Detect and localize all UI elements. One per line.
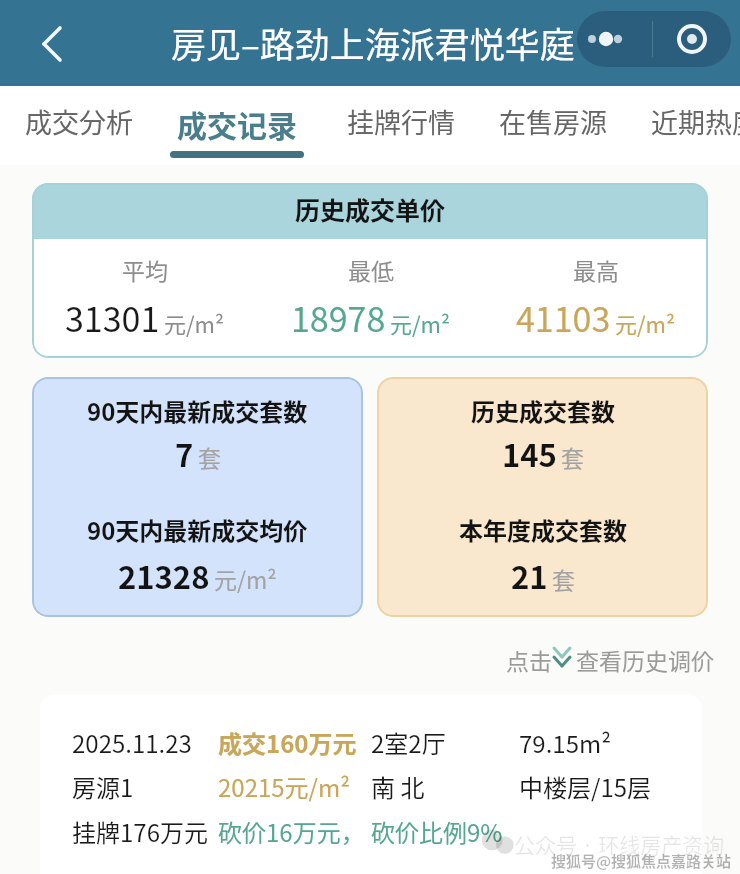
staticText: 中楼层/15层 xyxy=(519,769,652,804)
staticText: 21328 xyxy=(118,553,210,598)
staticText: 145 xyxy=(502,431,557,476)
staticText: 历史成交单价 xyxy=(295,191,446,227)
button[interactable]: 点击 xyxy=(506,637,714,682)
staticText: 7 xyxy=(175,431,194,476)
staticText: 本年度成交套数 xyxy=(459,512,627,547)
staticText: 18978 xyxy=(291,293,386,342)
button[interactable]: 2025.11.23 xyxy=(40,695,702,874)
staticText: 成交分析 xyxy=(25,102,133,141)
staticText: 房见–路劲上海派君悦华庭 xyxy=(171,17,575,68)
staticText: 砍价比例9% xyxy=(371,814,503,849)
staticText: 平均 xyxy=(122,253,168,286)
staticText: 挂牌176万元 xyxy=(72,814,218,849)
staticText: 在售房源 xyxy=(499,102,607,141)
staticText: 元/m² xyxy=(164,307,225,339)
staticText: 90天内最新成交均价 xyxy=(87,512,308,547)
staticText: 21 xyxy=(511,553,548,598)
button[interactable]: 成交分析 xyxy=(13,86,145,165)
staticText: 成交记录 xyxy=(177,102,297,145)
button[interactable]: More options xyxy=(577,11,652,67)
staticText: 元/m² xyxy=(214,562,277,595)
staticText: 79.15m² xyxy=(519,725,612,760)
button[interactable]: 在售房源 xyxy=(487,86,619,165)
staticText: 最高 xyxy=(573,253,619,286)
staticText: 套 xyxy=(198,440,221,473)
staticText: 历史成交套数 xyxy=(471,393,615,428)
staticText: 31301 xyxy=(65,293,160,342)
staticText: 2室2厅 xyxy=(371,725,519,760)
button[interactable]: 历史成交套数 xyxy=(377,377,708,617)
staticText: 套 xyxy=(552,562,575,595)
button[interactable]: 90天内最新成交套数 xyxy=(32,377,363,617)
button[interactable]: Locate xyxy=(653,11,731,67)
staticText: 元/m² xyxy=(615,307,676,339)
staticText: 南 北 xyxy=(371,769,519,804)
staticText: 砍价16万元， xyxy=(218,814,371,849)
staticText: 公众号 · 环线房产资询 xyxy=(514,829,725,859)
button[interactable]: 近期热度 xyxy=(639,86,740,165)
button[interactable]: 挂牌行情 xyxy=(335,86,467,165)
staticText: 点击 xyxy=(506,643,552,676)
staticText: 房源1 xyxy=(72,769,218,804)
staticText: 挂牌行情 xyxy=(347,102,455,141)
staticText: 元/m² xyxy=(390,307,451,339)
staticText: 2025.11.23 xyxy=(72,725,218,760)
staticText: 最低 xyxy=(348,253,394,286)
staticText: 查看历史调价 xyxy=(576,643,714,676)
button[interactable]: 成交记录 xyxy=(158,86,316,165)
button[interactable]: Back xyxy=(16,16,72,72)
staticText: 41103 xyxy=(516,293,611,342)
staticText: 近期热度 xyxy=(651,102,740,141)
staticText: 套 xyxy=(561,440,584,473)
staticText: 成交160万元 xyxy=(218,725,371,760)
staticText: 90天内最新成交套数 xyxy=(87,393,308,428)
staticText: 20215元/m² xyxy=(218,769,371,804)
staticText: 搜狐号@搜狐焦点嘉路关站 xyxy=(551,850,732,872)
